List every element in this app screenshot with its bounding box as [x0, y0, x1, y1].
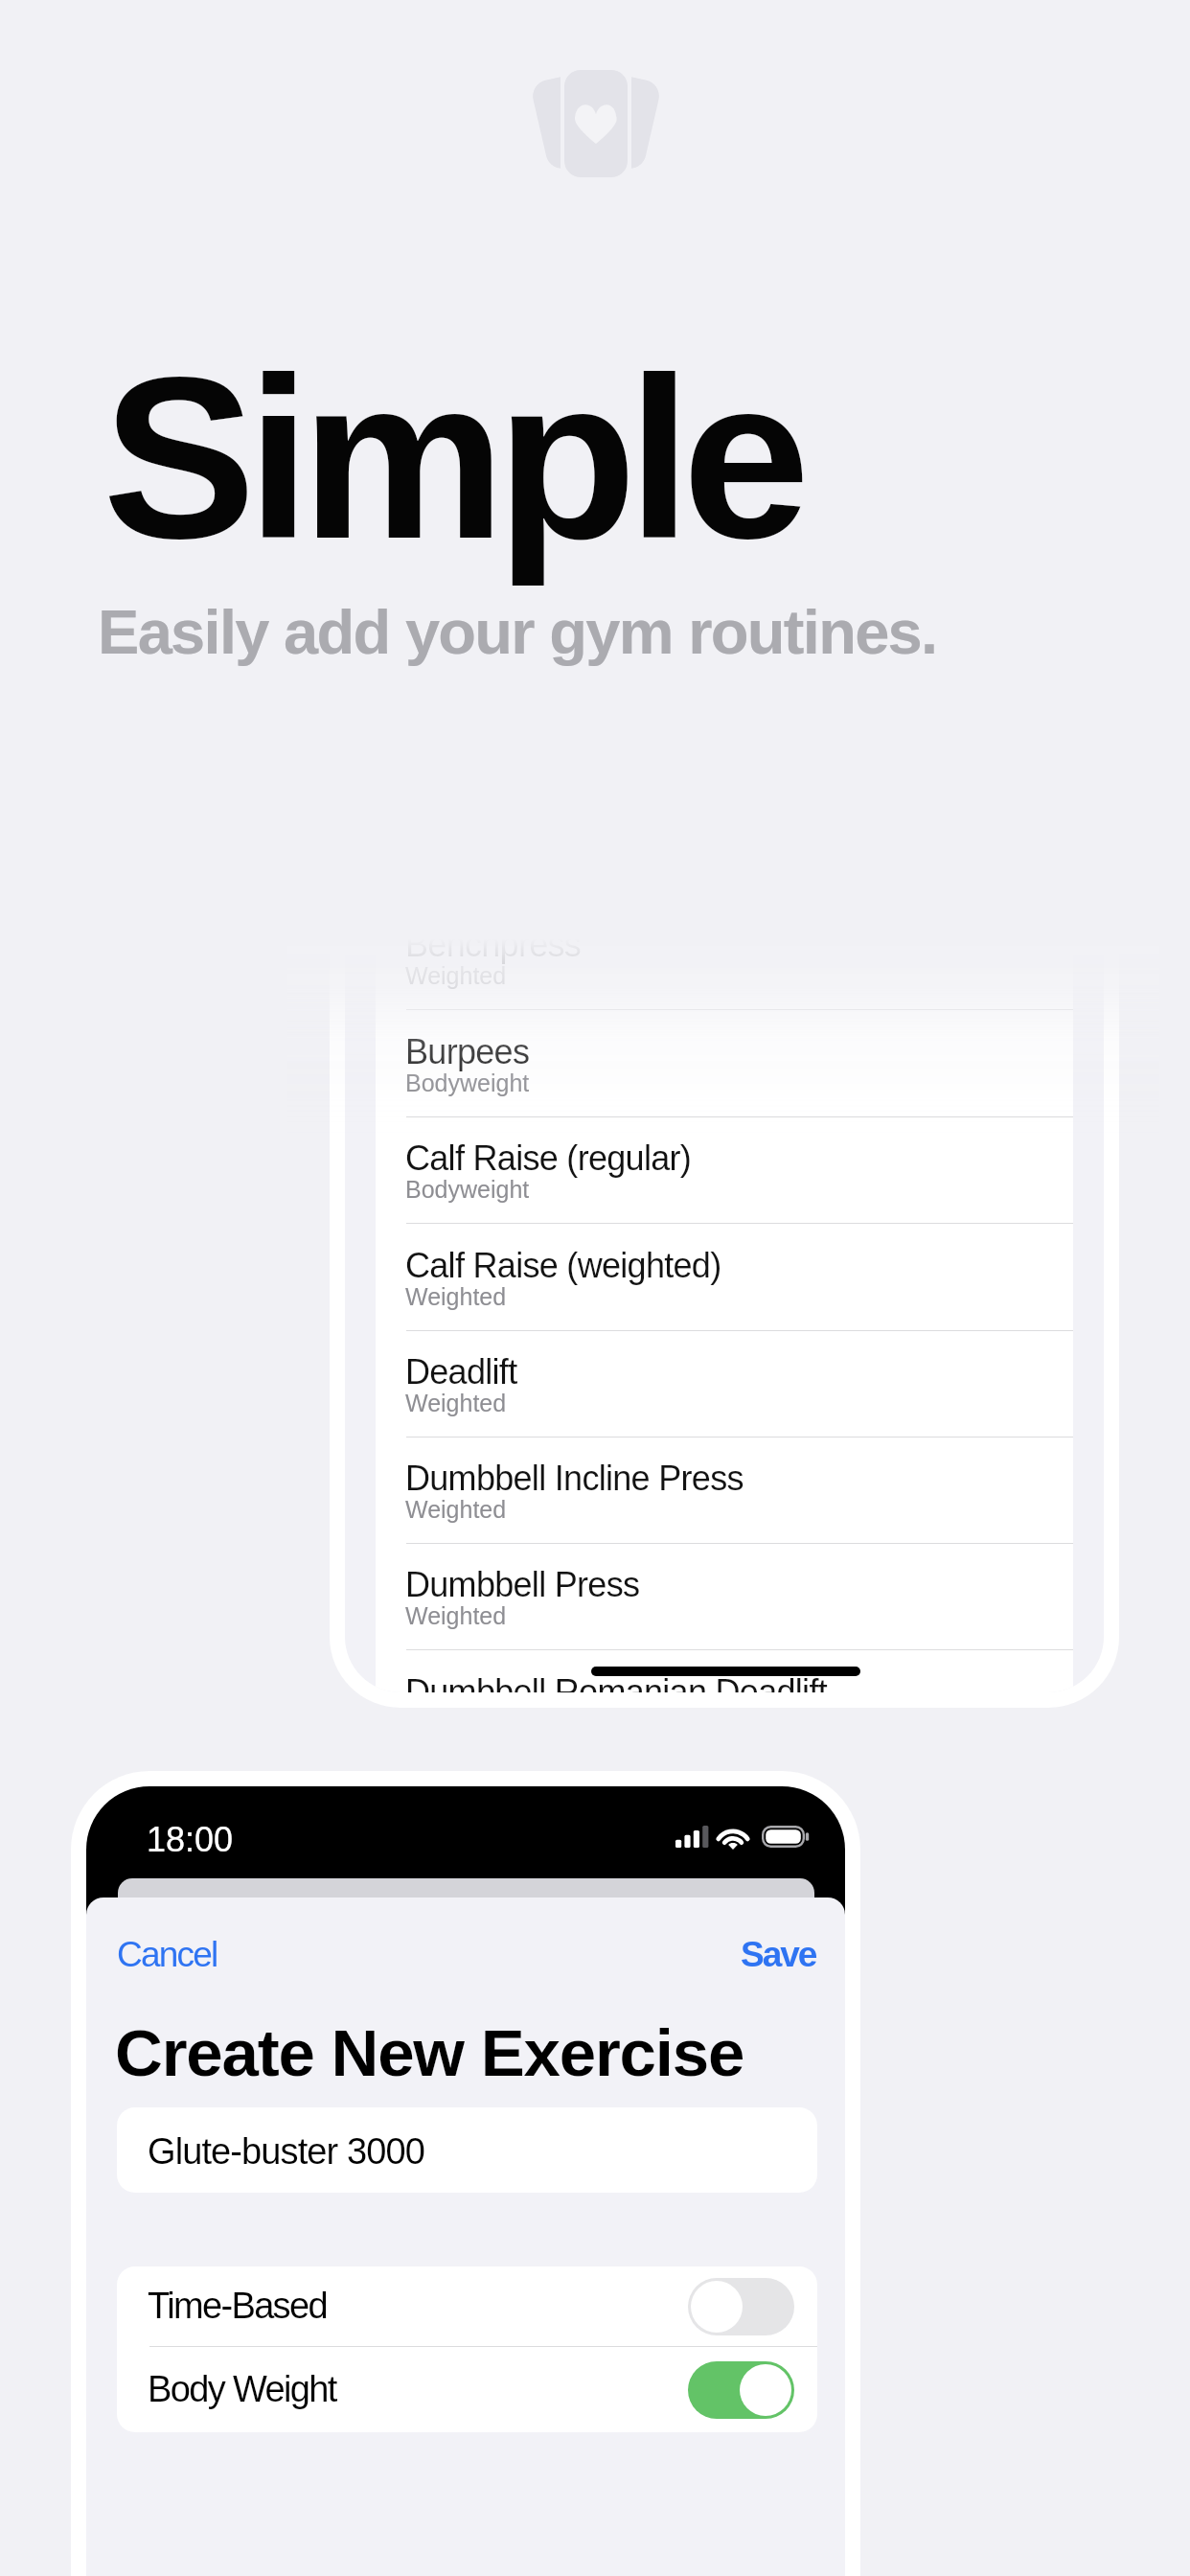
button[interactable]: Cancel [117, 1935, 217, 1974]
staticText: Time-Based [148, 2286, 327, 2326]
staticText: Easily add your gym routines. [98, 597, 937, 667]
staticText: Cancel [117, 1935, 217, 1974]
staticText: Burpees [405, 1032, 530, 1070]
button[interactable]: Deadlift [376, 1331, 1073, 1437]
other: Body Weight on [688, 2361, 794, 2419]
staticText: Weighted [405, 962, 507, 989]
button[interactable]: Body Weight [148, 2347, 794, 2432]
staticText: Weighted [405, 1496, 507, 1523]
staticText: Dumbbell Press [405, 1565, 640, 1603]
staticText: 18:00 [147, 1820, 234, 1858]
button[interactable]: Calf Raise (regular) [376, 1117, 1073, 1224]
staticText: Calf Raise (regular) [405, 1138, 692, 1177]
staticText: Save [741, 1935, 816, 1974]
other: Time-Based off [688, 2278, 794, 2335]
staticText: Bodyweight [405, 1176, 530, 1203]
button[interactable]: Burpees [376, 1011, 1073, 1117]
staticText: Weighted [405, 1602, 507, 1629]
button[interactable]: Dumbbell Press [376, 1544, 1073, 1650]
staticText: Dumbbell Incline Press [405, 1459, 744, 1497]
staticText: Calf Raise (weighted) [405, 1246, 721, 1284]
button[interactable]: Save [741, 1935, 816, 1974]
staticText: Glute-buster 3000 [148, 2131, 424, 2172]
button[interactable]: Dumbbell Romanian Deadlift [376, 1651, 1073, 1692]
staticText: Weighted [405, 1390, 507, 1416]
button[interactable]: Calf Raise (weighted) [376, 1225, 1073, 1331]
staticText: Body Weight [148, 2369, 336, 2409]
button[interactable]: Dumbbell Incline Press [376, 1437, 1073, 1544]
button[interactable]: Time-Based [148, 2266, 794, 2346]
staticText: Benchpress [405, 925, 582, 963]
staticText: Weighted [405, 1283, 507, 1310]
staticText: Simple [103, 330, 801, 586]
button[interactable]: Glute-buster 3000 [117, 2107, 817, 2193]
staticText: Create New Exercise [115, 2016, 744, 2090]
staticText: Deadlift [405, 1352, 517, 1391]
staticText: Bodyweight [405, 1069, 530, 1096]
staticText: Dumbbell Romanian Deadlift [405, 1672, 828, 1692]
